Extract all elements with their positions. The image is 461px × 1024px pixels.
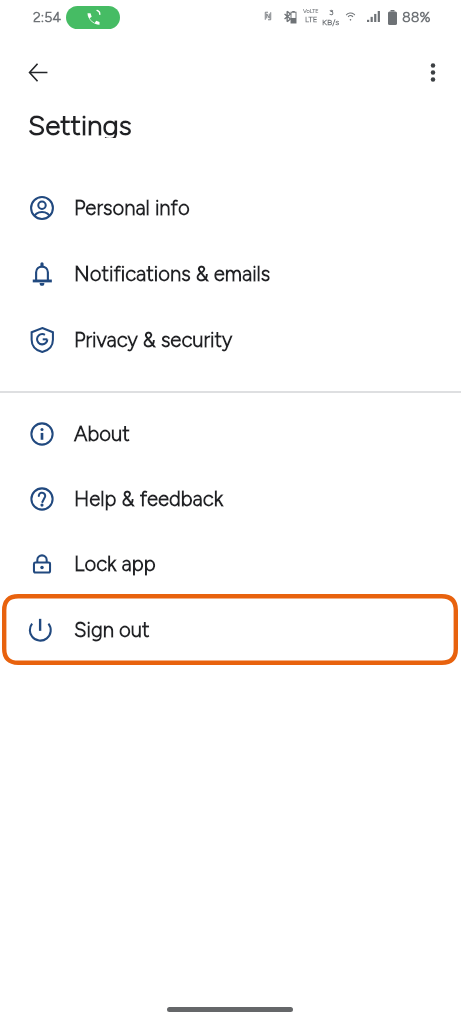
staticText: Notifications & emails	[74, 262, 271, 286]
staticText: KB/s	[322, 17, 340, 27]
button[interactable]: Personal info	[0, 175, 461, 241]
staticText: About	[74, 422, 130, 446]
staticText: Privacy & security	[74, 328, 233, 352]
staticText: 2:54	[33, 9, 61, 26]
button[interactable]: Sign out	[2, 594, 458, 665]
button[interactable]: More options	[413, 52, 453, 92]
staticText: Help & feedback	[74, 487, 224, 511]
staticText: Sign out	[74, 618, 150, 642]
button[interactable]: Notifications & emails	[0, 241, 461, 307]
staticText: LTE	[305, 15, 318, 24]
button[interactable]: Back	[16, 50, 60, 94]
button[interactable]: Privacy & security	[0, 307, 461, 373]
button[interactable]: Help & feedback	[0, 466, 461, 532]
button[interactable]: Lock app	[0, 531, 461, 597]
staticText: VoLTE	[303, 8, 319, 15]
staticText: Lock app	[74, 552, 156, 576]
staticText: Personal info	[74, 196, 190, 220]
staticText: Settings	[28, 108, 132, 138]
staticText: 88%	[402, 9, 431, 26]
button[interactable]: About	[0, 401, 461, 467]
staticText: 3	[329, 7, 334, 17]
